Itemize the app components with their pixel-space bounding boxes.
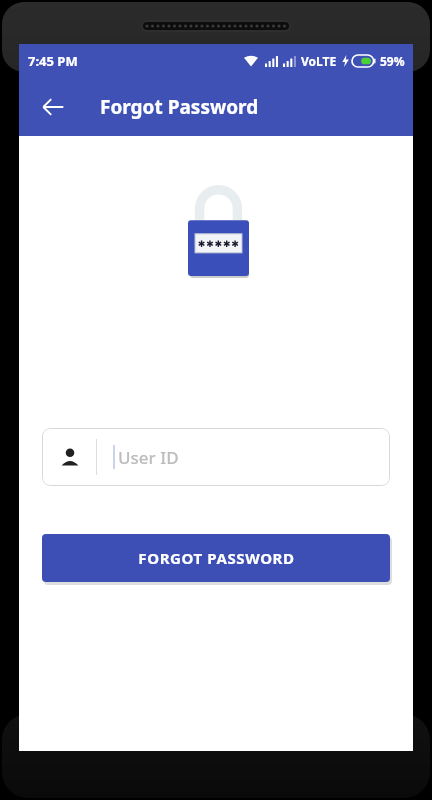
button[interactable]: User ID bbox=[42, 428, 390, 486]
staticText: 59% bbox=[380, 53, 405, 69]
button[interactable]: Back bbox=[31, 85, 75, 129]
staticText: 7:45 PM bbox=[28, 52, 78, 70]
staticText: VoLTE bbox=[301, 53, 337, 69]
staticText: FORGOT PASSWORD bbox=[138, 548, 295, 568]
button[interactable]: FORGOT PASSWORD bbox=[42, 534, 390, 582]
staticText: Forgot Password bbox=[100, 94, 259, 120]
staticText: User ID bbox=[118, 446, 179, 469]
